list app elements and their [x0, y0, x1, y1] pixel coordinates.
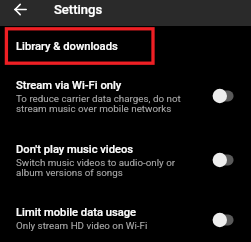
button[interactable]: Stream via Wi-Fi only: [199, 85, 235, 107]
staticText: Only stream HD video on Wi-Fi: [16, 220, 148, 231]
button[interactable]: Limit mobile data usage: [16, 206, 235, 231]
button[interactable]: Back: [7, 0, 33, 18]
staticText: Limit mobile data usage: [16, 206, 137, 219]
button[interactable]: Limit mobile data usage: [199, 209, 235, 231]
button[interactable]: Stream via Wi-Fi only: [16, 79, 235, 114]
staticText: Switch music videos to audio-only or alb…: [16, 157, 176, 178]
staticText: Don't play music videos: [16, 143, 134, 156]
staticText: Library & downloads: [16, 40, 118, 53]
staticText: Stream via Wi-Fi only: [16, 79, 122, 92]
button[interactable]: Don't play music videos: [199, 149, 235, 171]
button[interactable]: Library & downloads: [0, 27, 251, 64]
button[interactable]: Don't play music videos: [16, 143, 235, 178]
staticText: Settings: [54, 2, 103, 17]
staticText: To reduce carrier data charges, do not s…: [16, 93, 181, 114]
